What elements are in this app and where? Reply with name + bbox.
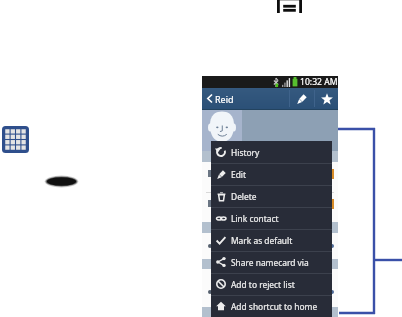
staticText: Reid [215,93,234,105]
button[interactable]: Mark as default [211,229,332,251]
button[interactable] [202,162,338,222]
button[interactable]: Home key [44,174,79,189]
button[interactable]: Edit [211,163,332,185]
button[interactable]: Apps [2,126,29,153]
staticText: Add shortcut to home [231,301,318,312]
button[interactable]: Link contact [211,207,332,229]
button[interactable]: Delete [211,185,332,207]
staticText: Link contact [231,213,279,224]
staticText: Edit [231,169,247,180]
button[interactable]: Favorite [315,88,338,109]
staticText: Mark as default [231,235,293,246]
staticText: Delete [231,191,257,202]
button[interactable]: Add shortcut to home [211,295,332,317]
staticText: 10:32 AM [300,76,338,88]
button[interactable] [202,233,338,259]
staticText: History [231,147,260,158]
button[interactable]: Reid [202,88,238,109]
button[interactable]: Edit [290,88,314,109]
staticText: Add to reject list [231,279,295,290]
button[interactable]: Menu key [277,0,302,13]
button[interactable]: Add to reject list [211,273,332,295]
button[interactable]: History [211,141,332,163]
staticText: Share namecard via [231,257,309,268]
button[interactable] [202,269,338,307]
button[interactable]: Share namecard via [211,251,332,273]
